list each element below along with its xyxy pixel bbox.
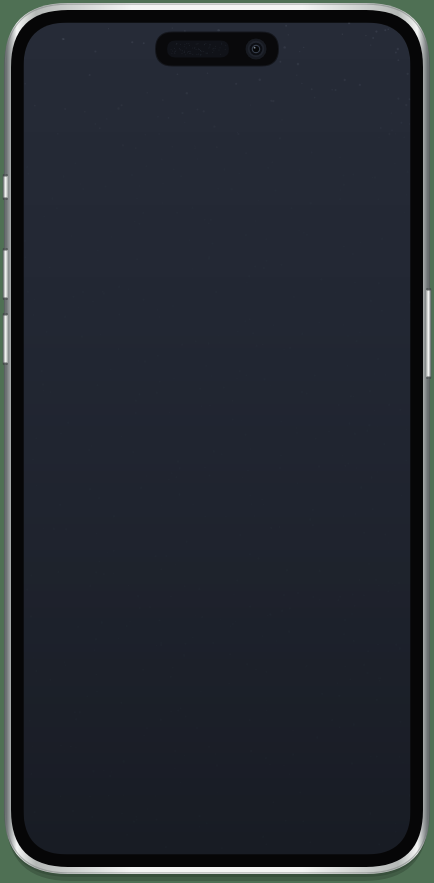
button bbox=[0, 0, 434, 883]
